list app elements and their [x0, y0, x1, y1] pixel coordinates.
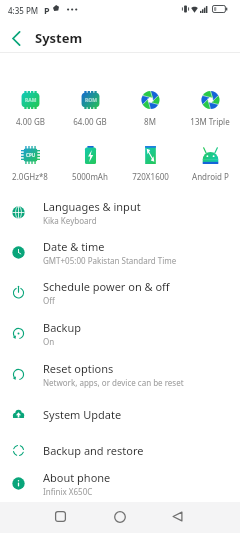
button[interactable]: 13M Triple: [180, 91, 240, 127]
button[interactable]: Home: [106, 503, 133, 530]
staticText: 5000mAh: [72, 171, 108, 182]
staticText: 4:35 PM: [8, 5, 39, 16]
staticText: GMT+05:00 Pakistan Standard Time: [43, 255, 177, 266]
staticText: 64.00 GB: [73, 116, 107, 127]
staticText: 4.00 GB: [16, 116, 45, 127]
button[interactable]: Reset options: [0, 355, 240, 393]
staticText: Backup and restore: [43, 443, 144, 458]
button[interactable]: 5000mAh: [60, 146, 120, 182]
button[interactable]: Backup and restore: [0, 433, 240, 467]
staticText: Infinix X650C: [43, 486, 93, 497]
staticText: Network, apps, or device can be reset: [43, 377, 184, 388]
button[interactable]: 8M: [120, 91, 180, 127]
staticText: Off: [43, 295, 55, 306]
staticText: 13M Triple: [190, 116, 230, 127]
button[interactable]: Back: [164, 503, 191, 530]
button[interactable]: Backup: [0, 314, 240, 352]
button[interactable]: 720X1600: [120, 146, 180, 182]
staticText: About phone: [43, 470, 111, 485]
staticText: Languages & input: [43, 199, 141, 214]
staticText: Schedule power on & off: [43, 279, 170, 294]
button[interactable]: About phone: [0, 464, 240, 502]
staticText: ROM: [85, 97, 97, 104]
button[interactable]: CPU: [0, 146, 60, 182]
staticText: Kika Keyboard: [43, 215, 97, 226]
button[interactable]: Date & time: [0, 233, 240, 271]
staticText: System: [35, 29, 83, 47]
button[interactable]: Recents: [47, 503, 74, 530]
staticText: Reset options: [43, 361, 114, 376]
button[interactable]: ROM: [60, 91, 120, 127]
staticText: System Update: [43, 407, 122, 422]
staticText: CPU: [26, 152, 36, 158]
staticText: Android P: [192, 171, 229, 182]
button[interactable]: Languages & input: [0, 193, 240, 231]
button[interactable]: Back: [5, 27, 27, 49]
button[interactable]: Schedule power on & off: [0, 273, 240, 311]
staticText: On: [43, 336, 55, 347]
staticText: Date & time: [43, 239, 105, 254]
button[interactable]: RAM: [0, 91, 60, 127]
staticText: 8M: [144, 116, 156, 127]
staticText: Backup: [43, 320, 82, 335]
staticText: RAM: [25, 97, 37, 104]
staticText: 2.0GHz*8: [12, 171, 48, 182]
button[interactable]: Android P: [180, 146, 240, 182]
button[interactable]: System Update: [0, 397, 240, 431]
staticText: P: [44, 4, 50, 16]
staticText: 720X1600: [132, 171, 169, 182]
